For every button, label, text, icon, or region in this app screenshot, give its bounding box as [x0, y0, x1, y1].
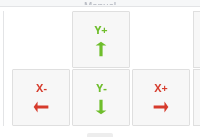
staticText: Y- — [96, 80, 107, 95]
button[interactable]: X- — [12, 69, 70, 126]
staticText: Y+ — [94, 22, 108, 37]
staticText: X- — [36, 80, 47, 95]
button[interactable]: Y- — [72, 69, 130, 126]
button[interactable]: Y+ — [72, 11, 130, 68]
staticText: Manual — [84, 0, 117, 5]
staticText: X+ — [154, 80, 168, 95]
button[interactable]: X+ — [132, 69, 190, 126]
